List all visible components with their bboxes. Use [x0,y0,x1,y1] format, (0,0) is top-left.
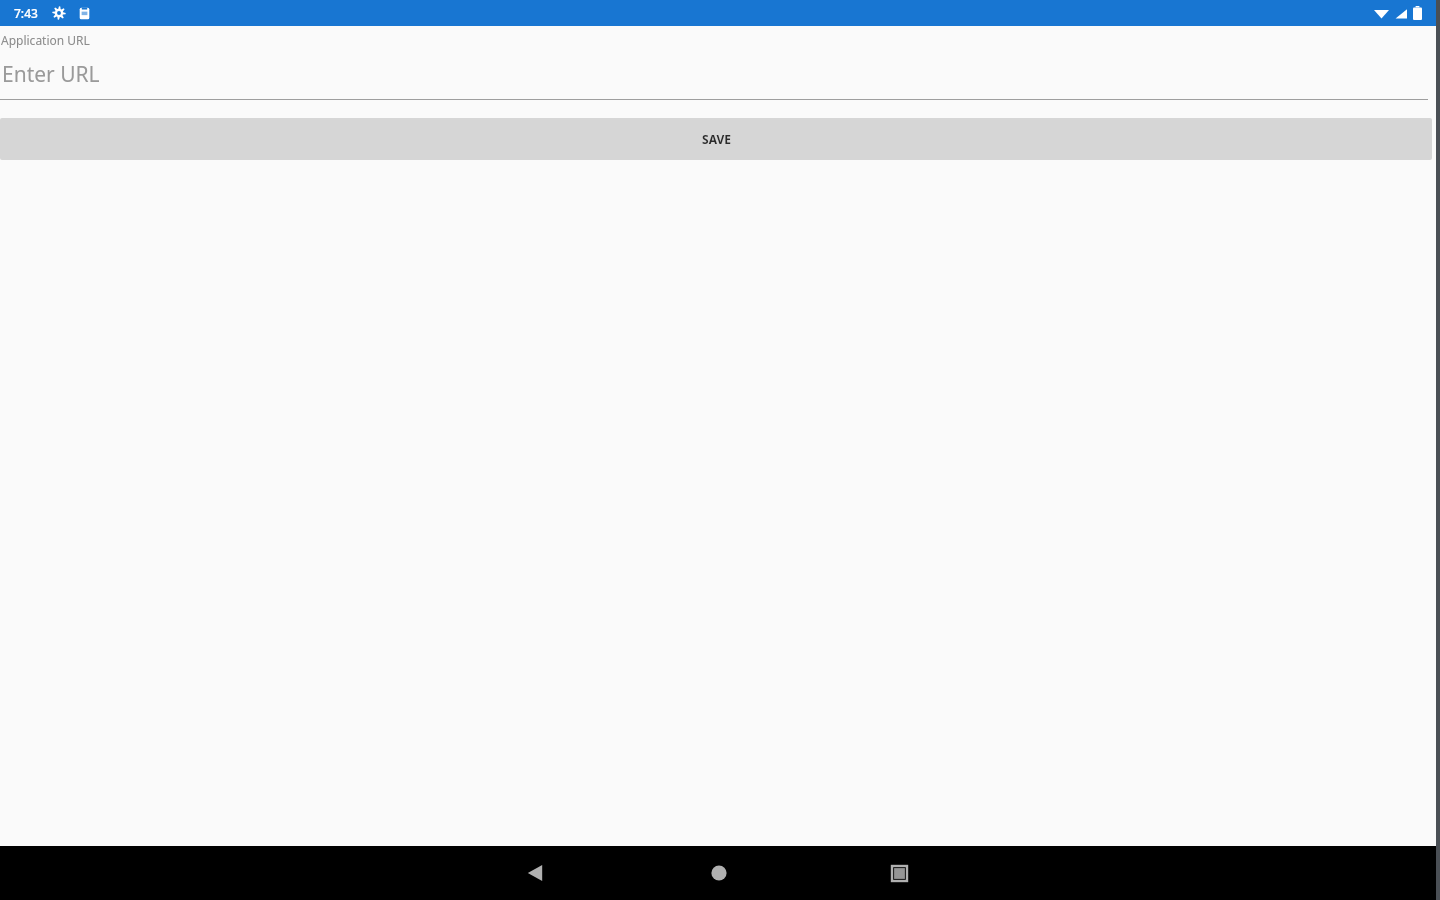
staticText: Application URL [1,32,90,48]
staticText: SAVE [702,131,731,147]
button[interactable]: SAVE [0,118,1432,160]
staticText: Enter URL [2,60,100,89]
button[interactable]: Back [511,849,559,897]
button[interactable]: Enter URL [0,52,1440,100]
button[interactable]: Recent apps [875,849,923,897]
button[interactable]: Home [695,849,743,897]
staticText: 7:43 [14,5,38,21]
